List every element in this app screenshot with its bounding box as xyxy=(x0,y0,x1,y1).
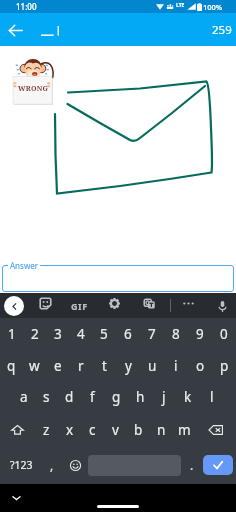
staticText: 1 xyxy=(8,325,16,343)
button[interactable]: Back xyxy=(0,15,30,45)
staticText: LTE xyxy=(176,2,185,9)
staticText: 100% xyxy=(203,2,223,12)
staticText: i xyxy=(174,357,178,375)
button[interactable]: j xyxy=(152,381,176,413)
button[interactable]: GIF xyxy=(66,296,92,316)
staticText: c xyxy=(89,421,96,439)
staticText: 3 xyxy=(54,325,62,343)
staticText: y xyxy=(125,357,132,375)
button[interactable]: r xyxy=(69,350,92,381)
button[interactable]: Expand toolbar xyxy=(4,296,24,316)
button[interactable]: u xyxy=(140,350,164,381)
staticText: . xyxy=(190,457,194,473)
staticText: r xyxy=(78,357,84,375)
button[interactable]: a xyxy=(12,381,35,413)
button[interactable]: 3 xyxy=(46,318,69,350)
staticText: l xyxy=(210,388,214,406)
staticText: f xyxy=(90,388,95,406)
button[interactable]: . xyxy=(181,446,203,484)
staticText: Answer xyxy=(10,260,38,271)
staticText: k xyxy=(184,388,192,406)
button[interactable]: 9 xyxy=(188,318,212,350)
button[interactable]: Emoji xyxy=(62,446,88,484)
staticText: g xyxy=(112,388,121,406)
staticText: w xyxy=(29,357,40,375)
button[interactable]: p xyxy=(212,350,236,381)
button[interactable]: Enter xyxy=(203,455,233,475)
button[interactable]: h xyxy=(128,381,152,413)
staticText: u xyxy=(148,357,157,375)
staticText: 259 xyxy=(212,22,232,38)
staticText: x xyxy=(66,421,74,439)
button[interactable]: Translate xyxy=(139,293,159,313)
button[interactable]: Shift xyxy=(0,413,35,446)
staticText: j xyxy=(162,388,166,406)
staticText: t xyxy=(102,357,107,375)
button[interactable]: y xyxy=(116,350,140,381)
staticText: 0 xyxy=(220,325,228,343)
button[interactable]: m xyxy=(173,413,196,446)
button[interactable]: 5 xyxy=(92,318,116,350)
button[interactable]: ?123 xyxy=(0,446,42,484)
staticText: WRONG xyxy=(18,84,49,94)
button[interactable]: Settings xyxy=(104,293,124,313)
button[interactable]: q xyxy=(0,350,23,381)
staticText: GIF xyxy=(71,300,88,312)
button[interactable]: 1 xyxy=(0,318,23,350)
button[interactable]: d xyxy=(58,381,81,413)
button[interactable]: i xyxy=(164,350,188,381)
staticText: 6 xyxy=(124,325,132,343)
staticText: 9 xyxy=(196,325,204,343)
staticText: 4 xyxy=(77,325,85,343)
button[interactable]: g xyxy=(104,381,128,413)
button[interactable]: Backspace xyxy=(196,413,236,446)
button[interactable]: w xyxy=(23,350,46,381)
button[interactable]: , xyxy=(42,446,62,484)
button[interactable]: Voice input xyxy=(213,297,231,315)
staticText: 2 xyxy=(31,325,39,343)
button[interactable]: n xyxy=(150,413,173,446)
button[interactable] xyxy=(2,265,234,292)
button[interactable]: Stickers xyxy=(35,293,55,313)
button[interactable]: 2 xyxy=(23,318,46,350)
button[interactable]: z xyxy=(35,413,58,446)
staticText: e xyxy=(54,357,62,375)
button[interactable]: l xyxy=(200,381,224,413)
staticText: m xyxy=(178,421,191,439)
staticText: b xyxy=(134,421,143,439)
button[interactable]: Hide keyboard xyxy=(7,489,25,507)
button[interactable]: b xyxy=(127,413,150,446)
button[interactable]: o xyxy=(188,350,212,381)
staticText: p xyxy=(220,357,229,375)
staticText: v xyxy=(112,421,119,439)
button[interactable]: t xyxy=(92,350,116,381)
staticText: 11:00 xyxy=(16,1,37,12)
staticText: 7 xyxy=(148,325,156,343)
staticText: , xyxy=(50,457,54,473)
button[interactable]: v xyxy=(104,413,127,446)
button[interactable]: k xyxy=(176,381,200,413)
staticText: o xyxy=(196,357,205,375)
button[interactable]: f xyxy=(81,381,104,413)
button[interactable]: e xyxy=(46,350,69,381)
staticText: n xyxy=(157,421,166,439)
staticText: d xyxy=(65,388,74,406)
staticText: 5 xyxy=(100,325,108,343)
button[interactable]: x xyxy=(58,413,81,446)
button[interactable]: 6 xyxy=(116,318,140,350)
button[interactable]: 0 xyxy=(212,318,236,350)
staticText: q xyxy=(7,357,16,375)
button[interactable]: 8 xyxy=(164,318,188,350)
staticText: s xyxy=(43,388,50,406)
button[interactable]: 7 xyxy=(140,318,164,350)
staticText: a xyxy=(20,388,28,406)
button[interactable]: c xyxy=(81,413,104,446)
button[interactable]: 4 xyxy=(69,318,92,350)
button[interactable]: More options xyxy=(178,293,198,313)
staticText: h xyxy=(136,388,145,406)
staticText: ?123 xyxy=(10,458,33,472)
staticText: 8 xyxy=(172,325,180,343)
staticText: z xyxy=(43,421,50,439)
button[interactable]: s xyxy=(35,381,58,413)
